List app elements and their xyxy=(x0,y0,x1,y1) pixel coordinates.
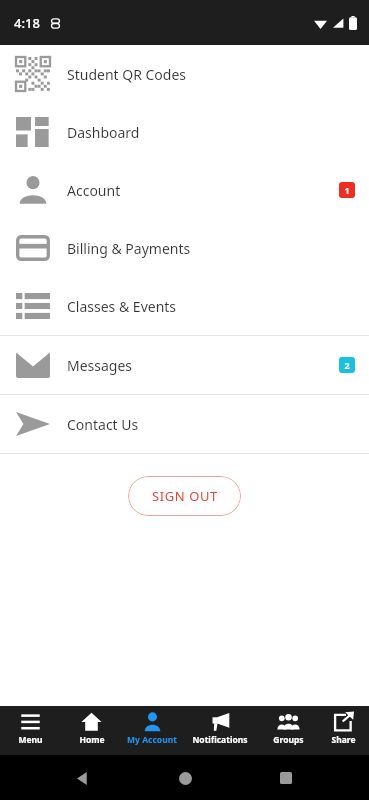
button[interactable]: Home xyxy=(61,706,122,755)
button[interactable]: Home xyxy=(166,759,204,797)
staticText: Share xyxy=(331,734,356,746)
button[interactable]: Account xyxy=(0,161,369,219)
button[interactable]: Menu xyxy=(0,706,61,755)
button[interactable]: Recent apps xyxy=(267,759,305,797)
staticText: 4:18 xyxy=(14,14,40,32)
button[interactable]: Share xyxy=(318,706,369,755)
staticText: Dashboard xyxy=(67,123,140,142)
staticText: Messages xyxy=(67,356,133,375)
button[interactable]: Back xyxy=(64,759,102,797)
staticText: Billing & Payments xyxy=(67,239,191,258)
button[interactable]: SIGN OUT xyxy=(128,476,241,516)
button[interactable]: Student QR Codes xyxy=(0,45,369,103)
staticText: Account xyxy=(67,181,121,200)
button[interactable]: Dashboard xyxy=(0,103,369,161)
button[interactable]: Messages xyxy=(0,336,369,394)
button[interactable]: Contact Us xyxy=(0,395,369,453)
staticText: Classes & Events xyxy=(67,297,177,316)
staticText: SIGN OUT xyxy=(152,487,218,505)
staticText: Groups xyxy=(273,734,304,746)
button[interactable]: Classes & Events xyxy=(0,277,369,335)
button[interactable]: Billing & Payments xyxy=(0,219,369,277)
staticText: Menu xyxy=(18,734,43,746)
button[interactable]: Groups xyxy=(258,706,318,755)
staticText: 2 xyxy=(344,359,350,371)
button[interactable]: Notifications xyxy=(182,706,258,755)
staticText: Student QR Codes xyxy=(67,65,187,84)
button[interactable]: My Account xyxy=(122,706,182,755)
staticText: 1 xyxy=(344,184,350,196)
staticText: Home xyxy=(79,734,105,746)
staticText: Notifications xyxy=(192,734,248,746)
staticText: My Account xyxy=(127,734,177,746)
staticText: Contact Us xyxy=(67,415,139,434)
